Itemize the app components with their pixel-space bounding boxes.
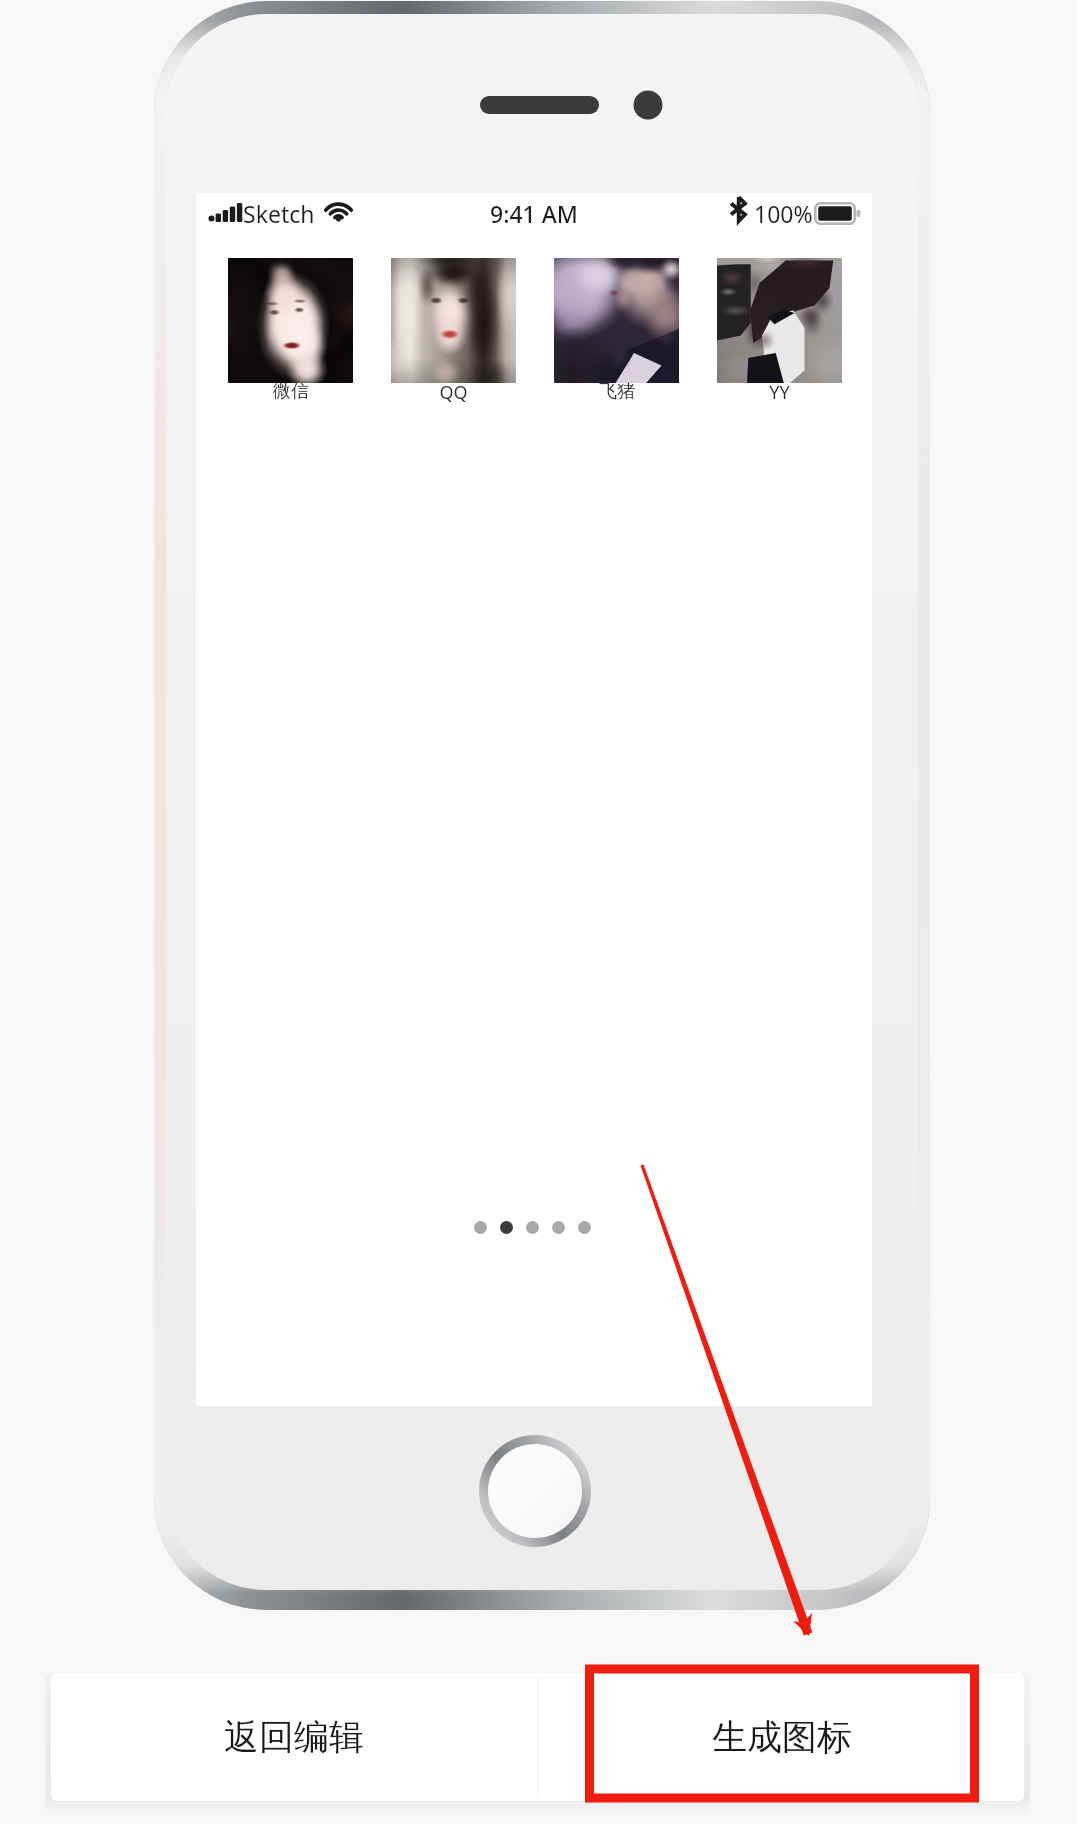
staticText: 飞猪 <box>599 380 635 403</box>
staticText: QQ <box>439 380 468 405</box>
button[interactable]: 微信 <box>228 258 353 383</box>
button[interactable]: 飞猪 <box>554 258 679 383</box>
staticText: 100% <box>754 198 813 229</box>
staticText: Sketch <box>243 198 315 229</box>
button[interactable]: QQ <box>391 258 516 383</box>
staticText: 9:41 AM <box>490 198 578 229</box>
staticText: 生成图标 <box>712 1715 852 1759</box>
button[interactable]: YY <box>717 258 842 383</box>
staticText: 返回编辑 <box>224 1715 364 1759</box>
button[interactable]: 生成图标 <box>539 1673 1024 1801</box>
staticText: YY <box>769 380 790 405</box>
staticText: 微信 <box>273 380 309 403</box>
button[interactable]: 返回编辑 <box>51 1673 537 1801</box>
